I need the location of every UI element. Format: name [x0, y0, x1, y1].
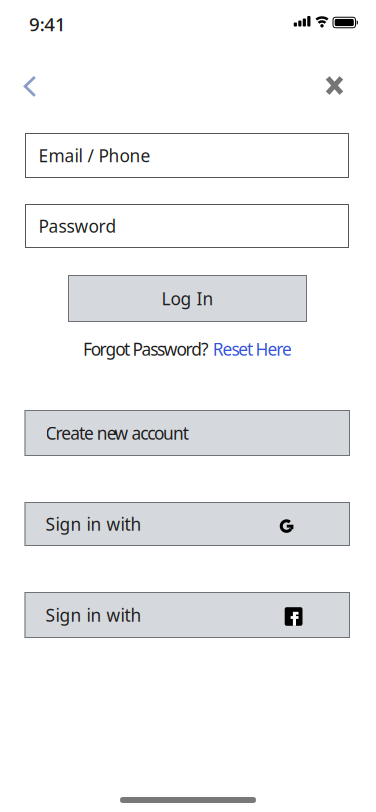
staticText: Sign in with [45, 603, 141, 626]
button[interactable]: Password [25, 204, 349, 248]
button[interactable]: Log In [68, 275, 307, 322]
button[interactable]: Back [15, 69, 45, 103]
staticText: Reset Here [213, 337, 292, 360]
staticText: Email / Phone [38, 144, 150, 167]
button[interactable]: Close [318, 68, 350, 102]
staticText: Forgot Password? [83, 337, 213, 360]
button[interactable]: Sign in with Facebook [24, 592, 350, 638]
staticText: Sign in with [45, 512, 141, 535]
staticText: Create new account [45, 421, 189, 444]
button[interactable]: Email / Phone [25, 133, 349, 178]
staticText: 9:41 [29, 12, 66, 36]
button[interactable]: Create new account [24, 410, 350, 456]
button[interactable]: Reset Here [213, 337, 292, 360]
button[interactable]: Sign in with Google [24, 502, 350, 546]
staticText: Password [38, 214, 116, 237]
staticText: Log In [161, 287, 213, 310]
